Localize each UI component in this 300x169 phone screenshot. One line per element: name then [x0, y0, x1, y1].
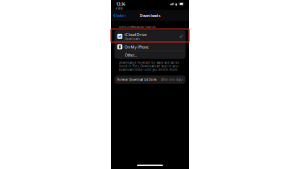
staticText: Other…	[125, 52, 137, 58]
staticText: STORE DOWNLOADED FILES ON	[118, 25, 155, 29]
staticText: Safari	[116, 13, 126, 18]
button[interactable]: Other…	[114, 51, 185, 59]
staticText: Remove Download List Items	[117, 78, 156, 81]
staticText: On My iPhone	[124, 44, 148, 49]
staticText: iCloud Drive	[124, 32, 146, 37]
button[interactable]: Remove Download List Items	[114, 75, 185, 84]
staticText: 13:36	[116, 1, 125, 6]
staticText: Safari	[118, 7, 124, 10]
button[interactable]: On My iPhone	[114, 43, 185, 51]
staticText: Downloads	[139, 13, 160, 18]
staticText: After one day	[161, 78, 180, 81]
staticText: Downloads	[124, 37, 139, 41]
button[interactable]: iCloud Drive	[114, 30, 185, 42]
staticText: Downloaded items will be saved and can b…	[118, 61, 179, 71]
button[interactable]: Safari	[111, 11, 128, 20]
